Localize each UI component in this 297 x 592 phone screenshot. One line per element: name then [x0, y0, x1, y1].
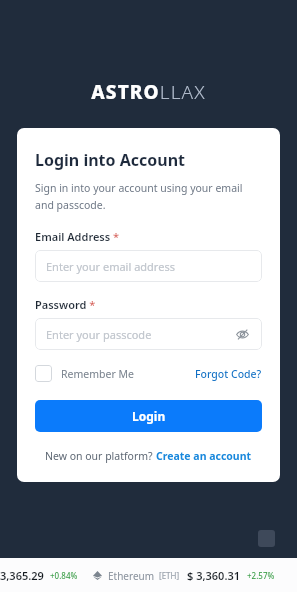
staticText: +0.84% — [50, 570, 78, 581]
staticText: Enter your passcode — [46, 327, 152, 342]
staticText: 3,365.29 — [0, 568, 44, 583]
button[interactable]: Enter your passcode — [35, 318, 262, 350]
staticText: $ 3,360.31 — [187, 568, 241, 583]
staticText: New on our platform? — [45, 449, 156, 463]
staticText: Create an account — [156, 449, 252, 463]
button[interactable]: Forgot Code? — [195, 365, 262, 383]
button[interactable]: Login — [35, 400, 262, 432]
button[interactable]: Create an account — [156, 449, 252, 463]
staticText: Sign in into your account using your ema… — [35, 181, 262, 212]
button[interactable]: Show password — [233, 325, 251, 343]
button[interactable]: Enter your email address — [35, 250, 262, 282]
staticText: ASTROLLAX — [91, 79, 206, 105]
staticText: [ETH] — [159, 570, 180, 581]
staticText: Login — [132, 408, 166, 424]
button[interactable]: Support chat — [258, 530, 275, 547]
staticText: Email Address * — [35, 229, 120, 244]
staticText: +2.57% — [247, 570, 275, 581]
staticText: Login into Account — [35, 149, 186, 171]
staticText: Remember Me — [61, 367, 134, 381]
staticText: Password * — [35, 297, 96, 312]
staticText: Ethereum — [108, 569, 155, 583]
staticText: Enter your email address — [46, 259, 175, 274]
staticText: Forgot Code? — [195, 367, 262, 381]
button[interactable]: Remember Me — [35, 363, 134, 384]
